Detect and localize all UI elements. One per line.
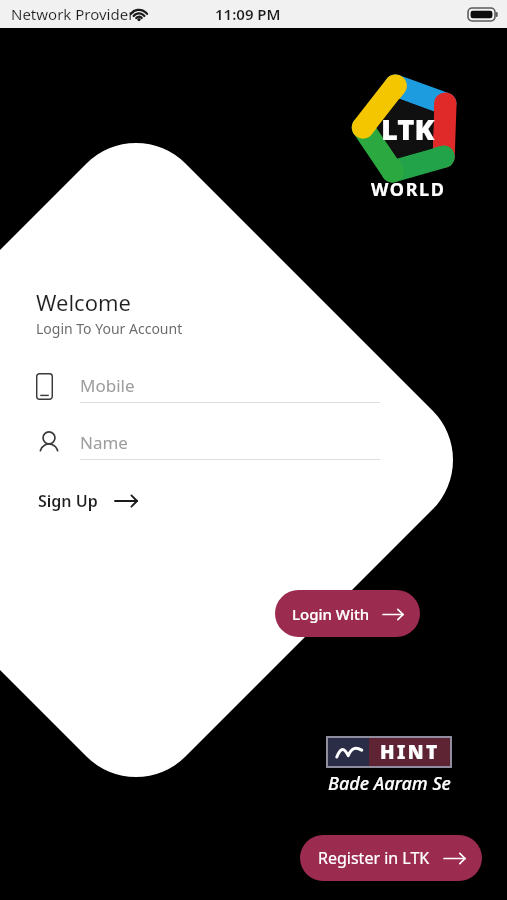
button[interactable]: Sign Up (36, 482, 139, 520)
staticText: Mobile (80, 374, 135, 397)
staticText: Login With (292, 604, 370, 624)
staticText: Name (80, 431, 128, 454)
button[interactable]: Register in LTK (300, 835, 482, 881)
other: Register in LTK (444, 852, 465, 865)
staticText: Bade Aaram Se (328, 771, 451, 796)
staticText: Sign Up (38, 490, 98, 512)
staticText: 11:09 PM (215, 4, 281, 24)
staticText: Network Provider (11, 4, 135, 24)
staticText: HINT (380, 739, 440, 765)
button[interactable]: Login With (275, 590, 420, 637)
staticText: LTK (381, 109, 435, 148)
staticText: Login To Your Account (36, 319, 183, 338)
staticText: Welcome (36, 287, 131, 317)
staticText: WORLD (371, 177, 446, 202)
staticText: Register in LTK (318, 847, 430, 869)
